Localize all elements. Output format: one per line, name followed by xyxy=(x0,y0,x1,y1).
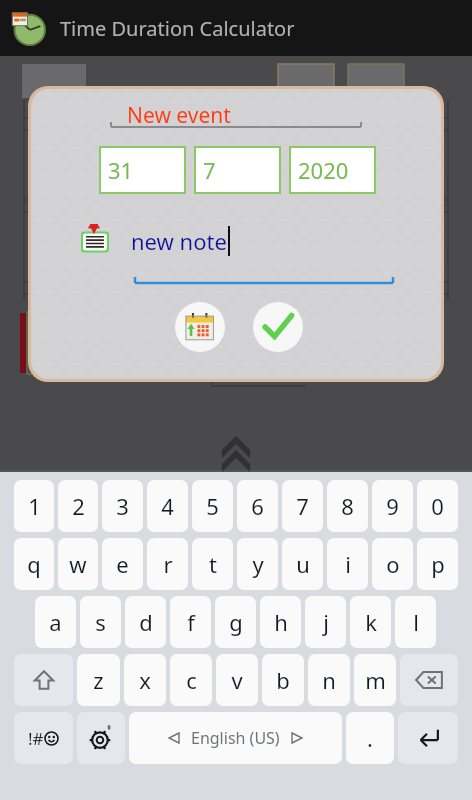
staticText: 7 xyxy=(203,155,216,185)
button[interactable]: n xyxy=(308,654,350,706)
staticText: h xyxy=(274,607,288,637)
button[interactable]: 7 xyxy=(282,480,323,532)
button[interactable]: w xyxy=(58,538,98,590)
button[interactable]: i xyxy=(327,538,368,590)
button[interactable]: 8 xyxy=(327,480,368,532)
staticText: 2020 xyxy=(298,155,349,185)
button[interactable]: 7 xyxy=(194,146,281,194)
staticText: 7 xyxy=(296,491,309,521)
staticText: 9 xyxy=(386,491,399,521)
staticText: p xyxy=(431,549,445,579)
button[interactable]: 1 xyxy=(14,480,54,532)
button[interactable]: 2020 xyxy=(289,146,376,194)
button[interactable]: p xyxy=(417,538,458,590)
staticText: g xyxy=(229,607,243,637)
button[interactable]: q xyxy=(14,538,54,590)
staticText: s xyxy=(95,607,106,637)
staticText: i xyxy=(345,549,351,579)
staticText: w xyxy=(69,549,87,579)
staticText: m xyxy=(365,665,386,695)
staticText: k xyxy=(365,607,377,637)
button[interactable]: a xyxy=(35,596,76,648)
button[interactable]: . xyxy=(346,712,394,764)
button[interactable]: English (US) xyxy=(129,712,342,764)
staticText: 0 xyxy=(431,491,444,521)
staticText: English (US) xyxy=(191,727,280,749)
button[interactable]: Settings xyxy=(77,712,125,764)
staticText: x xyxy=(139,665,151,695)
button[interactable]: 31 xyxy=(99,146,186,194)
button[interactable]: k xyxy=(350,596,391,648)
button[interactable]: y xyxy=(237,538,278,590)
staticText: 1 xyxy=(28,491,41,521)
staticText: New event xyxy=(127,101,231,130)
button[interactable]: 9 xyxy=(372,480,413,532)
button[interactable]: Pick date xyxy=(175,302,225,352)
button[interactable]: Hide keyboard xyxy=(214,428,258,472)
staticText: b xyxy=(276,665,290,695)
button[interactable]: u xyxy=(282,538,323,590)
staticText: 31 xyxy=(108,155,134,185)
staticText: 3 xyxy=(116,491,129,521)
button[interactable]: s xyxy=(80,596,121,648)
staticText: v xyxy=(231,665,243,695)
button[interactable]: j xyxy=(305,596,346,648)
button[interactable]: 4 xyxy=(147,480,188,532)
staticText: d xyxy=(139,607,153,637)
staticText: 4 xyxy=(161,491,174,521)
button[interactable]: Enter xyxy=(398,712,458,764)
button[interactable]: l xyxy=(395,596,436,648)
staticText: t xyxy=(209,549,217,579)
staticText: 8 xyxy=(341,491,354,521)
button[interactable]: b xyxy=(262,654,304,706)
staticText: o xyxy=(386,549,400,579)
button[interactable]: 0 xyxy=(417,480,458,532)
button[interactable]: f xyxy=(170,596,211,648)
button[interactable]: 5 xyxy=(192,480,233,532)
staticText: c xyxy=(186,665,197,695)
staticText: e xyxy=(116,549,129,579)
staticText: Time Duration Calculator xyxy=(60,15,295,42)
staticText: n xyxy=(322,665,336,695)
button[interactable]: t xyxy=(192,538,233,590)
button[interactable]: d xyxy=(125,596,166,648)
button[interactable]: Confirm xyxy=(253,302,303,352)
staticText: new note xyxy=(131,226,227,256)
staticText: z xyxy=(93,665,104,695)
staticText: j xyxy=(323,607,329,637)
staticText: 5 xyxy=(206,491,219,521)
button[interactable]: e xyxy=(102,538,143,590)
button[interactable]: r xyxy=(147,538,188,590)
button[interactable]: v xyxy=(216,654,258,706)
staticText: y xyxy=(252,549,264,579)
staticText: a xyxy=(49,607,62,637)
staticText: 6 xyxy=(251,491,264,521)
button[interactable]: 6 xyxy=(237,480,278,532)
button[interactable]: 2 xyxy=(58,480,98,532)
staticText: . xyxy=(367,723,373,753)
button[interactable]: Backspace xyxy=(400,654,458,706)
button[interactable]: Symbols xyxy=(14,712,73,764)
staticText: u xyxy=(296,549,310,579)
button[interactable]: g xyxy=(215,596,256,648)
button[interactable]: c xyxy=(170,654,212,706)
button[interactable]: m xyxy=(354,654,396,706)
button[interactable]: h xyxy=(260,596,301,648)
staticText: l xyxy=(413,607,419,637)
button[interactable]: z xyxy=(77,654,120,706)
staticText: f xyxy=(187,607,195,637)
staticText: r xyxy=(163,549,173,579)
staticText: q xyxy=(27,549,41,579)
button[interactable]: 3 xyxy=(102,480,143,532)
staticText: 2 xyxy=(72,491,85,521)
button[interactable]: o xyxy=(372,538,413,590)
button[interactable]: x xyxy=(124,654,166,706)
button[interactable]: Shift xyxy=(14,654,73,706)
staticText: !# xyxy=(28,727,44,750)
